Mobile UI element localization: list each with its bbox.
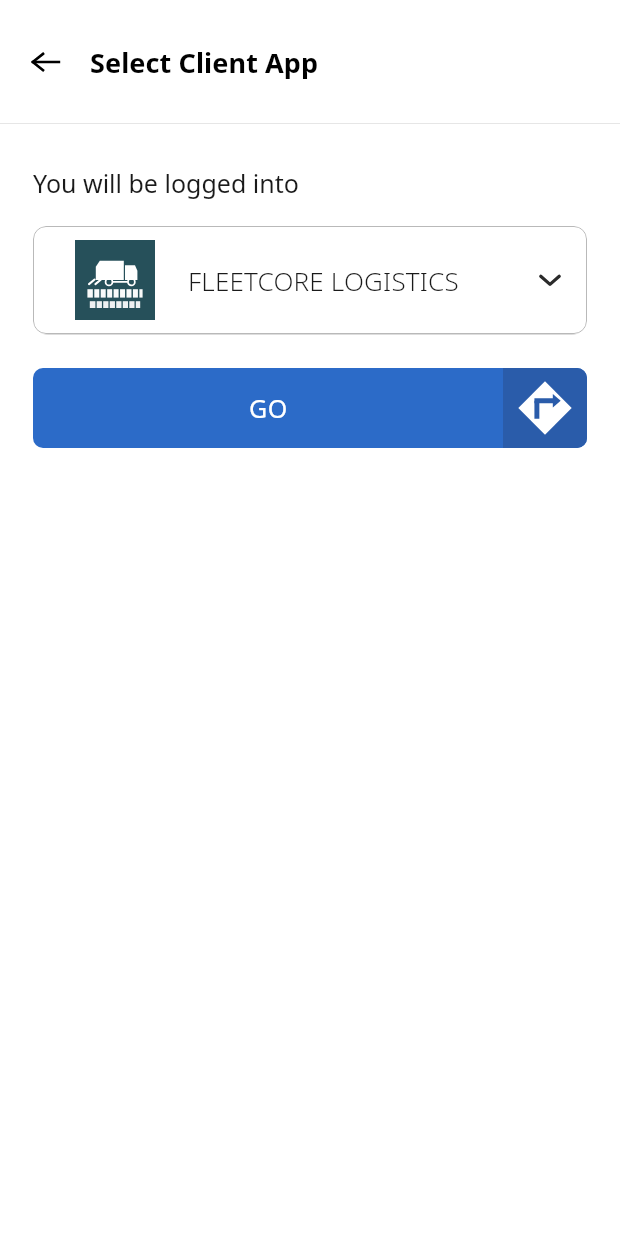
staticText: You will be logged into: [33, 166, 299, 200]
button[interactable]: Back: [24, 40, 68, 84]
button[interactable]: FLEETCORE LOGISTICS: [33, 226, 587, 334]
button[interactable]: GO: [33, 368, 587, 448]
staticText: GO: [249, 391, 288, 425]
staticText: Select Client App: [90, 44, 319, 81]
staticText: FLEETCORE LOGISTICS: [188, 263, 527, 298]
